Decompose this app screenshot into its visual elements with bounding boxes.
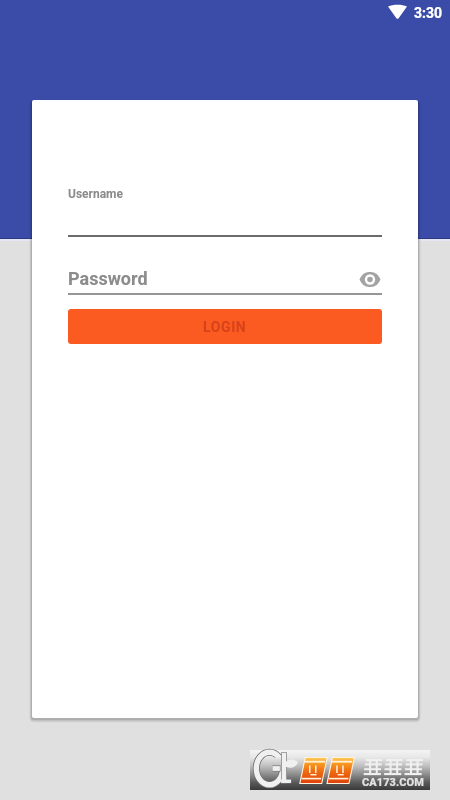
staticText: LOGIN xyxy=(203,319,247,335)
staticText: Username xyxy=(68,187,123,201)
staticText: Password xyxy=(68,268,148,289)
button[interactable]: Toggle password visibility xyxy=(349,258,391,300)
button[interactable]: LOGIN xyxy=(68,309,382,344)
staticText: CA173.COM xyxy=(362,776,425,789)
button[interactable]: Password xyxy=(68,258,382,295)
button[interactable]: Username xyxy=(68,172,382,237)
staticText: 3:30 xyxy=(414,5,443,21)
